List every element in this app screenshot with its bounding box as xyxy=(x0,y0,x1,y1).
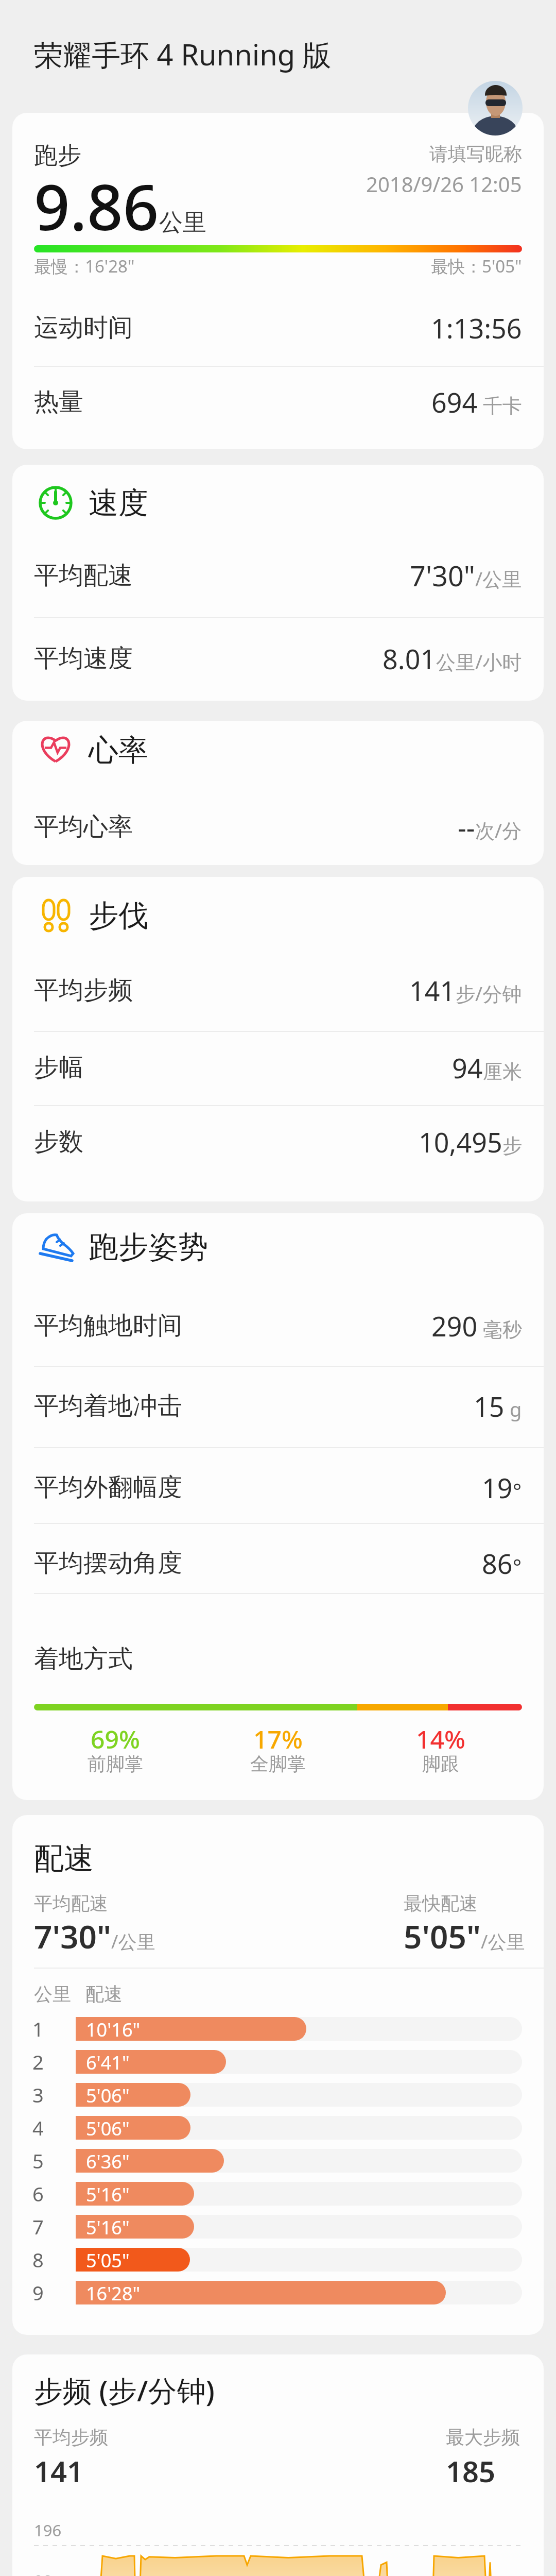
staticText: 最慢：16'28" xyxy=(34,255,135,278)
staticText: 次/分 xyxy=(475,817,522,843)
button[interactable]: 心率 xyxy=(12,721,544,865)
staticText: 步频 (步/分钟) xyxy=(34,2370,215,2410)
staticText: 6 xyxy=(32,2180,44,2207)
staticText: 141 xyxy=(34,2451,84,2490)
staticText: 7'30" xyxy=(410,556,475,595)
staticText: 全脚掌 xyxy=(250,1752,306,1775)
staticText: 8 xyxy=(32,2246,44,2273)
staticText: 最快配速 xyxy=(404,1892,478,1915)
staticText: 平均着地冲击 xyxy=(34,1391,182,1421)
button[interactable]: 步频 (步/分钟) xyxy=(12,2354,544,2576)
staticText: ° xyxy=(513,1477,522,1504)
staticText: 平均速度 xyxy=(34,643,133,674)
staticText: 141 xyxy=(409,972,456,1009)
staticText: 步幅 xyxy=(34,1052,83,1083)
staticText: 8.01 xyxy=(383,640,436,677)
staticText: 步 xyxy=(502,1133,522,1158)
button[interactable]: 跑步姿势 xyxy=(12,1213,544,1800)
staticText: g xyxy=(505,1396,522,1422)
staticText: 公里/小时 xyxy=(436,648,522,675)
staticText: 69% xyxy=(91,1722,140,1756)
staticText: 5 xyxy=(32,2147,44,2174)
button[interactable]: 速度 xyxy=(12,465,544,701)
staticText: 平均配速 xyxy=(34,1892,108,1915)
staticText: 公里 xyxy=(159,208,206,238)
staticText: 公里 xyxy=(34,1982,71,2006)
staticText: 3 xyxy=(32,2081,44,2108)
staticText: 前脚掌 xyxy=(88,1752,143,1775)
staticText: 5'06" xyxy=(86,2083,130,2107)
staticText: 17% xyxy=(253,1722,303,1756)
staticText: 9.86 xyxy=(34,163,159,249)
staticText: 1 xyxy=(32,2015,44,2042)
staticText: 跑步姿势 xyxy=(89,1228,208,1266)
staticText: /公里 xyxy=(481,1929,525,1954)
staticText: 平均外翻幅度 xyxy=(34,1472,182,1503)
staticText: 荣耀手环 4 Running 版 xyxy=(34,35,332,74)
staticText: 平均触地时间 xyxy=(34,1310,182,1341)
staticText: 7'30" xyxy=(34,1914,111,1958)
staticText: 配速 xyxy=(85,1982,123,2006)
staticText: 98 xyxy=(34,2570,53,2576)
staticText: 步/分钟 xyxy=(456,980,522,1007)
button[interactable]: 步伐 xyxy=(12,877,544,1201)
staticText: 请填写昵称 xyxy=(429,142,522,165)
staticText: 16'28" xyxy=(86,2281,141,2304)
staticText: 毫秒 xyxy=(478,1315,522,1342)
staticText: 脚跟 xyxy=(422,1752,459,1775)
staticText: 最快：5'05" xyxy=(431,255,522,278)
staticText: 185 xyxy=(446,2451,496,2490)
staticText: 86 xyxy=(482,1545,513,1582)
staticText: ° xyxy=(513,1552,522,1580)
staticText: 着地方式 xyxy=(34,1643,133,1674)
staticText: 跑步 xyxy=(34,141,81,171)
staticText: 平均配速 xyxy=(34,560,133,591)
staticText: 步伐 xyxy=(89,897,148,935)
staticText: 平均步频 xyxy=(34,975,133,1006)
staticText: 6'36" xyxy=(86,2149,130,2173)
staticText: 94 xyxy=(452,1049,483,1086)
staticText: 5'05" xyxy=(404,1914,481,1958)
staticText: /公里 xyxy=(111,1929,155,1954)
staticText: -- xyxy=(458,809,475,845)
staticText: 7 xyxy=(32,2213,44,2240)
staticText: 290 xyxy=(431,1308,478,1344)
staticText: 最大步频 xyxy=(446,2426,520,2449)
staticText: 5'06" xyxy=(86,2116,130,2140)
staticText: 2018/9/26 12:05 xyxy=(366,170,522,198)
staticText: 1:13:56 xyxy=(431,310,522,346)
staticText: 厘米 xyxy=(483,1059,522,1084)
staticText: 心率 xyxy=(89,732,148,769)
staticText: 10'16" xyxy=(86,2017,141,2041)
staticText: 平均步频 xyxy=(34,2426,108,2449)
staticText: 5'16" xyxy=(86,2215,130,2239)
staticText: 配速 xyxy=(34,1840,94,1877)
staticText: 14% xyxy=(416,1722,465,1756)
staticText: 2 xyxy=(32,2048,44,2075)
staticText: 速度 xyxy=(89,484,148,522)
staticText: 196 xyxy=(34,2519,62,2541)
staticText: 5'16" xyxy=(86,2182,130,2206)
staticText: 千卡 xyxy=(478,392,522,418)
staticText: 平均心率 xyxy=(34,811,133,842)
staticText: 6'41" xyxy=(86,2050,130,2074)
staticText: 10,495 xyxy=(419,1124,502,1160)
staticText: 热量 xyxy=(34,386,83,417)
staticText: 19 xyxy=(482,1469,513,1506)
staticText: 平均摆动角度 xyxy=(34,1548,182,1579)
staticText: 运动时间 xyxy=(34,312,133,343)
staticText: 5'05" xyxy=(86,2248,130,2272)
staticText: 694 xyxy=(431,384,478,420)
staticText: 4 xyxy=(32,2114,44,2141)
staticText: 步数 xyxy=(34,1126,83,1157)
button[interactable]: 跑步 xyxy=(12,113,544,449)
button[interactable] xyxy=(468,81,523,135)
staticText: 15 xyxy=(474,1388,505,1425)
button[interactable]: 配速 xyxy=(12,1815,544,2335)
staticText: /公里 xyxy=(475,565,522,592)
staticText: 9 xyxy=(32,2279,44,2306)
